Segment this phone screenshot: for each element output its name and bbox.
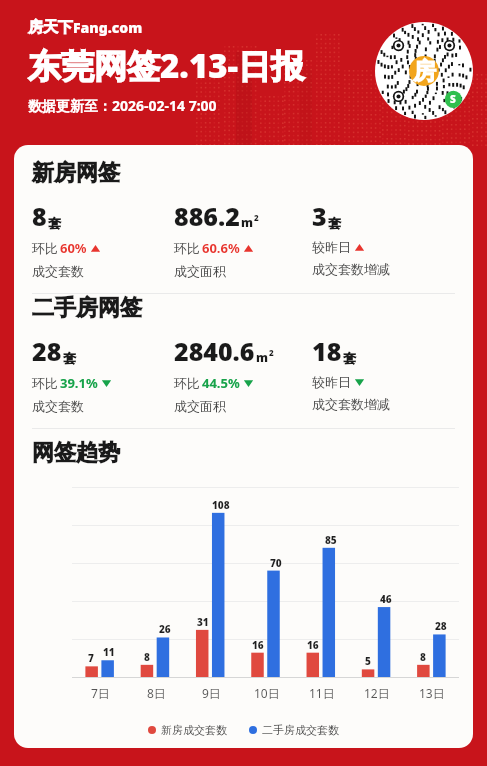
button[interactable]: 8 [32, 199, 174, 279]
staticText: 成交套数增减 [312, 261, 390, 277]
staticText: 16 [252, 638, 264, 652]
staticText: 东莞网签2.13-日报 [28, 43, 305, 88]
staticText: 28 [32, 334, 62, 368]
staticText: 8日 [147, 685, 166, 701]
staticText: 70 [270, 556, 282, 570]
button[interactable]: 886.2 [174, 199, 312, 279]
staticText: 套 [63, 350, 76, 366]
staticText: 13日 [419, 685, 445, 701]
button[interactable]: 18 [312, 334, 459, 412]
staticText: 套 [343, 350, 356, 366]
staticText: 2840.6 [174, 334, 255, 368]
button[interactable]: 新房成交套数 [148, 723, 227, 737]
staticText: 31 [197, 615, 209, 629]
button[interactable]: 3 [312, 199, 459, 277]
staticText: 数据更新至：2026-02-14 7:00 [28, 96, 217, 115]
staticText: 成交套数 [32, 263, 84, 279]
staticText: m [241, 214, 254, 230]
staticText: m [256, 349, 269, 365]
staticText: 套 [328, 215, 341, 231]
staticText: 7 [88, 651, 94, 665]
staticText: 较昨日 [312, 374, 351, 390]
staticText: 108 [212, 498, 230, 512]
staticText: 12日 [364, 685, 390, 701]
staticText: 5 [365, 654, 371, 668]
staticText: 39.1% [60, 374, 98, 392]
staticText: 18 [312, 334, 342, 368]
staticText: 11 [103, 645, 115, 659]
staticText: 环比 [32, 375, 58, 391]
staticText: 环比 [32, 240, 58, 256]
staticText: 60.6% [202, 239, 240, 257]
staticText: 房天下 [28, 18, 73, 37]
staticText: 2 [254, 212, 259, 223]
staticText: 房 [413, 57, 436, 86]
staticText: 44.5% [202, 374, 240, 392]
staticText: 较昨日 [312, 239, 351, 255]
staticText: 11日 [309, 685, 335, 701]
staticText: 10日 [254, 685, 280, 701]
staticText: 16 [307, 638, 319, 652]
staticText: 7日 [91, 685, 110, 701]
staticText: 网签趋势 [32, 439, 120, 467]
button[interactable]: 扫码关注公众号 [375, 22, 473, 120]
staticText: 环比 [174, 375, 200, 391]
staticText: 套 [48, 215, 61, 231]
staticText: 26 [159, 622, 171, 636]
staticText: 8 [32, 199, 47, 233]
staticText: 85 [325, 533, 337, 547]
staticText: 60% [60, 239, 87, 257]
staticText: 9日 [202, 685, 221, 701]
staticText: Fang.com [73, 18, 143, 37]
staticText: 8 [144, 650, 150, 664]
staticText: S [450, 92, 456, 106]
staticText: 新房网签 [32, 159, 120, 187]
staticText: 成交套数 [32, 398, 84, 414]
button[interactable]: 2840.6 [174, 334, 312, 414]
button[interactable]: 28 [32, 334, 174, 414]
staticText: 环比 [174, 240, 200, 256]
staticText: 886.2 [174, 199, 240, 233]
staticText: 46 [380, 592, 392, 606]
staticText: 成交面积 [174, 398, 226, 414]
staticText: 二手房网签 [32, 294, 142, 322]
staticText: 成交面积 [174, 263, 226, 279]
staticText: 二手房成交套数 [262, 723, 339, 737]
staticText: 新房成交套数 [161, 723, 227, 737]
staticText: 2 [269, 347, 274, 358]
staticText: 3 [312, 199, 327, 233]
staticText: 成交套数增减 [312, 396, 390, 412]
staticText: 8 [420, 650, 426, 664]
staticText: 28 [435, 619, 447, 633]
button[interactable]: 二手房成交套数 [249, 723, 339, 737]
